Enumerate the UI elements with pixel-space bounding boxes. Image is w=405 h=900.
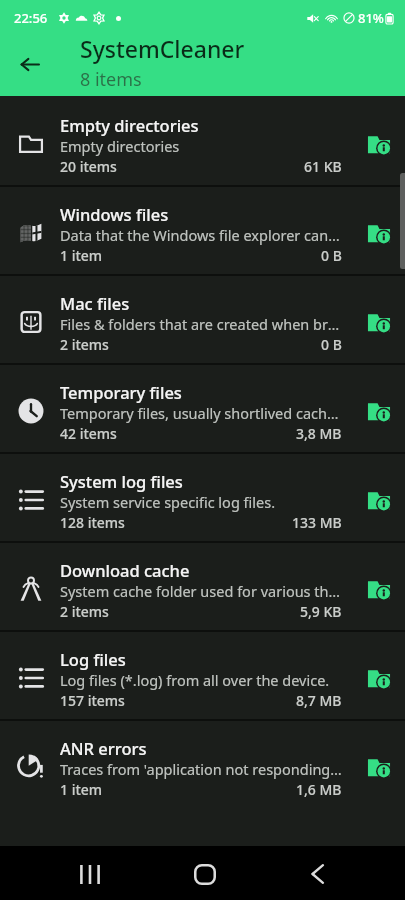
button[interactable]: Temporary files — [0, 365, 405, 452]
staticText: Temporary files, usually shortlived cach… — [60, 403, 342, 423]
staticText: 5,9 KB — [300, 602, 342, 621]
button[interactable]: Back — [10, 44, 50, 84]
staticText: 61 KB — [304, 157, 342, 176]
staticText: 0 B — [321, 246, 342, 265]
staticText: Files & folders that are created when br… — [60, 314, 342, 334]
staticText: System cache folder used for various thi… — [60, 581, 342, 601]
button[interactable]: Recents — [0, 846, 180, 900]
staticText: 157 items — [60, 691, 125, 710]
staticText: ANR errors — [60, 737, 147, 759]
staticText: Log files — [60, 648, 126, 670]
staticText: Windows files — [60, 203, 169, 225]
staticText: 133 MB — [292, 513, 342, 532]
button[interactable]: Info — [362, 572, 396, 606]
button[interactable]: Empty directories — [0, 98, 405, 185]
staticText: System log files — [60, 470, 183, 492]
staticText: 22:56 — [14, 9, 48, 27]
staticText: Mac files — [60, 292, 130, 314]
staticText: 8 items — [80, 67, 142, 91]
staticText: Log files (*.log) from all over the devi… — [60, 670, 330, 690]
button[interactable]: Log files — [0, 632, 405, 719]
staticText: 81% — [358, 9, 384, 27]
staticText: 8,7 MB — [296, 691, 342, 710]
button[interactable]: Info — [362, 216, 396, 250]
button[interactable]: ANR errors — [0, 721, 405, 808]
button[interactable]: Info — [362, 305, 396, 339]
staticText: 3,8 MB — [296, 424, 342, 443]
button[interactable]: Info — [362, 750, 396, 784]
staticText: 1,6 MB — [296, 780, 342, 799]
button[interactable]: Mac files — [0, 276, 405, 363]
staticText: Empty directories — [60, 136, 180, 156]
staticText: 0 B — [321, 335, 342, 354]
button[interactable]: Download cache — [0, 543, 405, 630]
staticText: System service specific log files. — [60, 492, 276, 512]
staticText: 20 items — [60, 157, 117, 176]
staticText: Data that the Windows file explorer can … — [60, 225, 342, 245]
staticText: 2 items — [60, 335, 109, 354]
button[interactable]: Info — [362, 127, 396, 161]
staticText: 1 item — [60, 780, 103, 799]
button[interactable]: Home — [180, 846, 229, 900]
button[interactable]: Info — [362, 661, 396, 695]
staticText: Empty directories — [60, 114, 199, 136]
staticText: Traces from 'application not responding'… — [60, 759, 342, 779]
staticText: 2 items — [60, 602, 109, 621]
staticText: 1 item — [60, 246, 103, 265]
staticText: SystemCleaner — [80, 33, 245, 64]
staticText: 128 items — [60, 513, 125, 532]
button[interactable]: Info — [362, 394, 396, 428]
staticText: Download cache — [60, 559, 190, 581]
staticText: 42 items — [60, 424, 117, 443]
staticText: Temporary files — [60, 381, 182, 403]
button[interactable]: System log files — [0, 454, 405, 541]
button[interactable]: Back — [229, 846, 405, 900]
button[interactable]: Info — [362, 483, 396, 517]
button[interactable]: Windows files — [0, 187, 405, 274]
